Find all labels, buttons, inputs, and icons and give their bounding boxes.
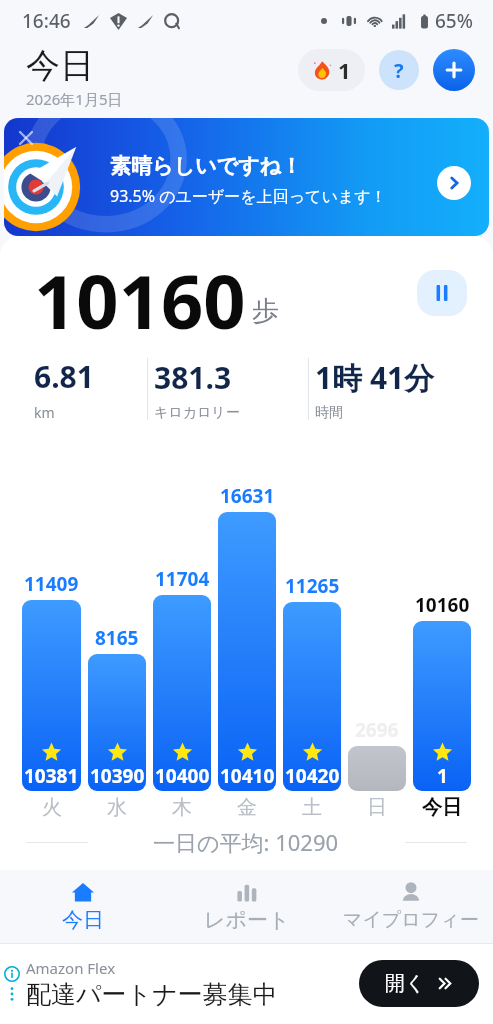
- staticText: 10390: [90, 763, 145, 789]
- staticText: 今日: [62, 907, 104, 933]
- button[interactable]: レポート: [165, 870, 329, 943]
- staticText: マイプロフィー: [343, 908, 479, 932]
- staticText: 金: [237, 795, 257, 820]
- button[interactable]: 2696: [348, 436, 406, 820]
- staticText: 1: [437, 763, 448, 789]
- button[interactable]: 8165: [88, 436, 146, 820]
- button[interactable]: 1: [298, 49, 365, 91]
- button[interactable]: Help: [379, 50, 419, 90]
- staticText: 10381: [24, 763, 79, 789]
- staticText: 今日: [26, 44, 94, 87]
- button[interactable]: 11265: [283, 436, 341, 820]
- staticText: 16631: [220, 483, 275, 509]
- staticText: レポート: [204, 907, 290, 933]
- staticText: 2026年1月5日: [26, 89, 123, 109]
- staticText: 素晴らしいですね！: [110, 153, 302, 179]
- staticText: 土: [302, 795, 322, 820]
- staticText: 16:46: [22, 8, 71, 34]
- staticText: km: [34, 403, 55, 422]
- staticText: 93.5% のユーザーを上回っています！: [110, 185, 387, 207]
- button[interactable]: Add: [433, 49, 475, 91]
- button[interactable]: Pause: [417, 270, 467, 316]
- staticText: 開く: [385, 971, 426, 996]
- staticText: 今日: [422, 795, 462, 820]
- staticText: 65%: [435, 8, 473, 34]
- staticText: 歩: [252, 294, 279, 328]
- staticText: 11265: [285, 573, 340, 599]
- button[interactable]: More: [437, 166, 471, 200]
- button[interactable]: 11704: [153, 436, 211, 820]
- staticText: 10400: [155, 763, 210, 789]
- staticText: 10160: [415, 592, 470, 618]
- staticText: 10410: [220, 763, 275, 789]
- button[interactable]: 今日: [0, 870, 165, 943]
- staticText: 火: [42, 795, 62, 820]
- other: Ad info: [4, 966, 20, 982]
- staticText: 日: [367, 795, 387, 820]
- staticText: 10160: [34, 250, 246, 336]
- button[interactable]: 16631: [218, 436, 276, 820]
- staticText: 時間: [315, 404, 343, 422]
- staticText: 8165: [95, 625, 139, 651]
- staticText: Amazon Flex: [26, 958, 116, 978]
- button[interactable]: 11409: [22, 436, 81, 820]
- staticText: 11409: [24, 571, 79, 597]
- staticText: 1: [338, 55, 351, 85]
- button[interactable]: 素晴らしいですね！: [4, 118, 489, 236]
- staticText: 1時 41分: [315, 357, 435, 398]
- staticText: 2696: [355, 717, 399, 743]
- staticText: 10420: [285, 763, 340, 789]
- staticText: 水: [107, 795, 127, 820]
- staticText: 木: [172, 795, 192, 820]
- button[interactable]: 開く: [359, 960, 479, 1007]
- staticText: 11704: [155, 566, 210, 592]
- staticText: 配達パートナー募集中: [26, 979, 278, 1010]
- staticText: 一日の平均: 10290: [153, 827, 339, 857]
- button[interactable]: マイプロフィー: [329, 870, 493, 943]
- staticText: ?: [394, 57, 404, 84]
- staticText: 6.81: [34, 356, 94, 397]
- other: Ad options: [10, 987, 14, 1001]
- button[interactable]: Close: [16, 128, 36, 148]
- button[interactable]: 10160: [413, 436, 471, 820]
- staticText: キロカロリー: [154, 404, 240, 422]
- staticText: 381.3: [154, 357, 232, 398]
